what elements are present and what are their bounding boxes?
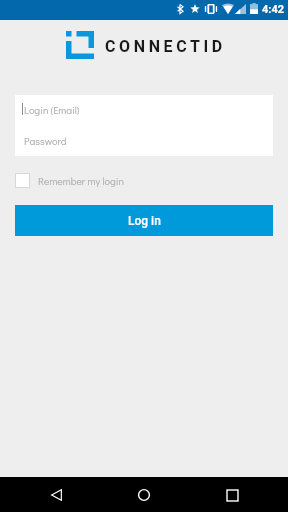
staticText: Log in (128, 214, 161, 228)
button[interactable]: Password (15, 125, 273, 156)
button[interactable]: Recent apps (216, 479, 248, 511)
staticText: 4:42 (262, 3, 285, 16)
button[interactable]: Back (40, 479, 72, 511)
staticText: Remember my login (38, 174, 125, 188)
staticText: Login (Email) (24, 103, 80, 117)
button[interactable]: Remember my login (15, 172, 125, 189)
button[interactable]: Log in (15, 205, 273, 236)
staticText: CONNECTID (105, 37, 226, 56)
button[interactable]: Home (128, 479, 160, 511)
button[interactable]: Login (Email) (15, 95, 273, 125)
staticText: Password (24, 134, 67, 148)
